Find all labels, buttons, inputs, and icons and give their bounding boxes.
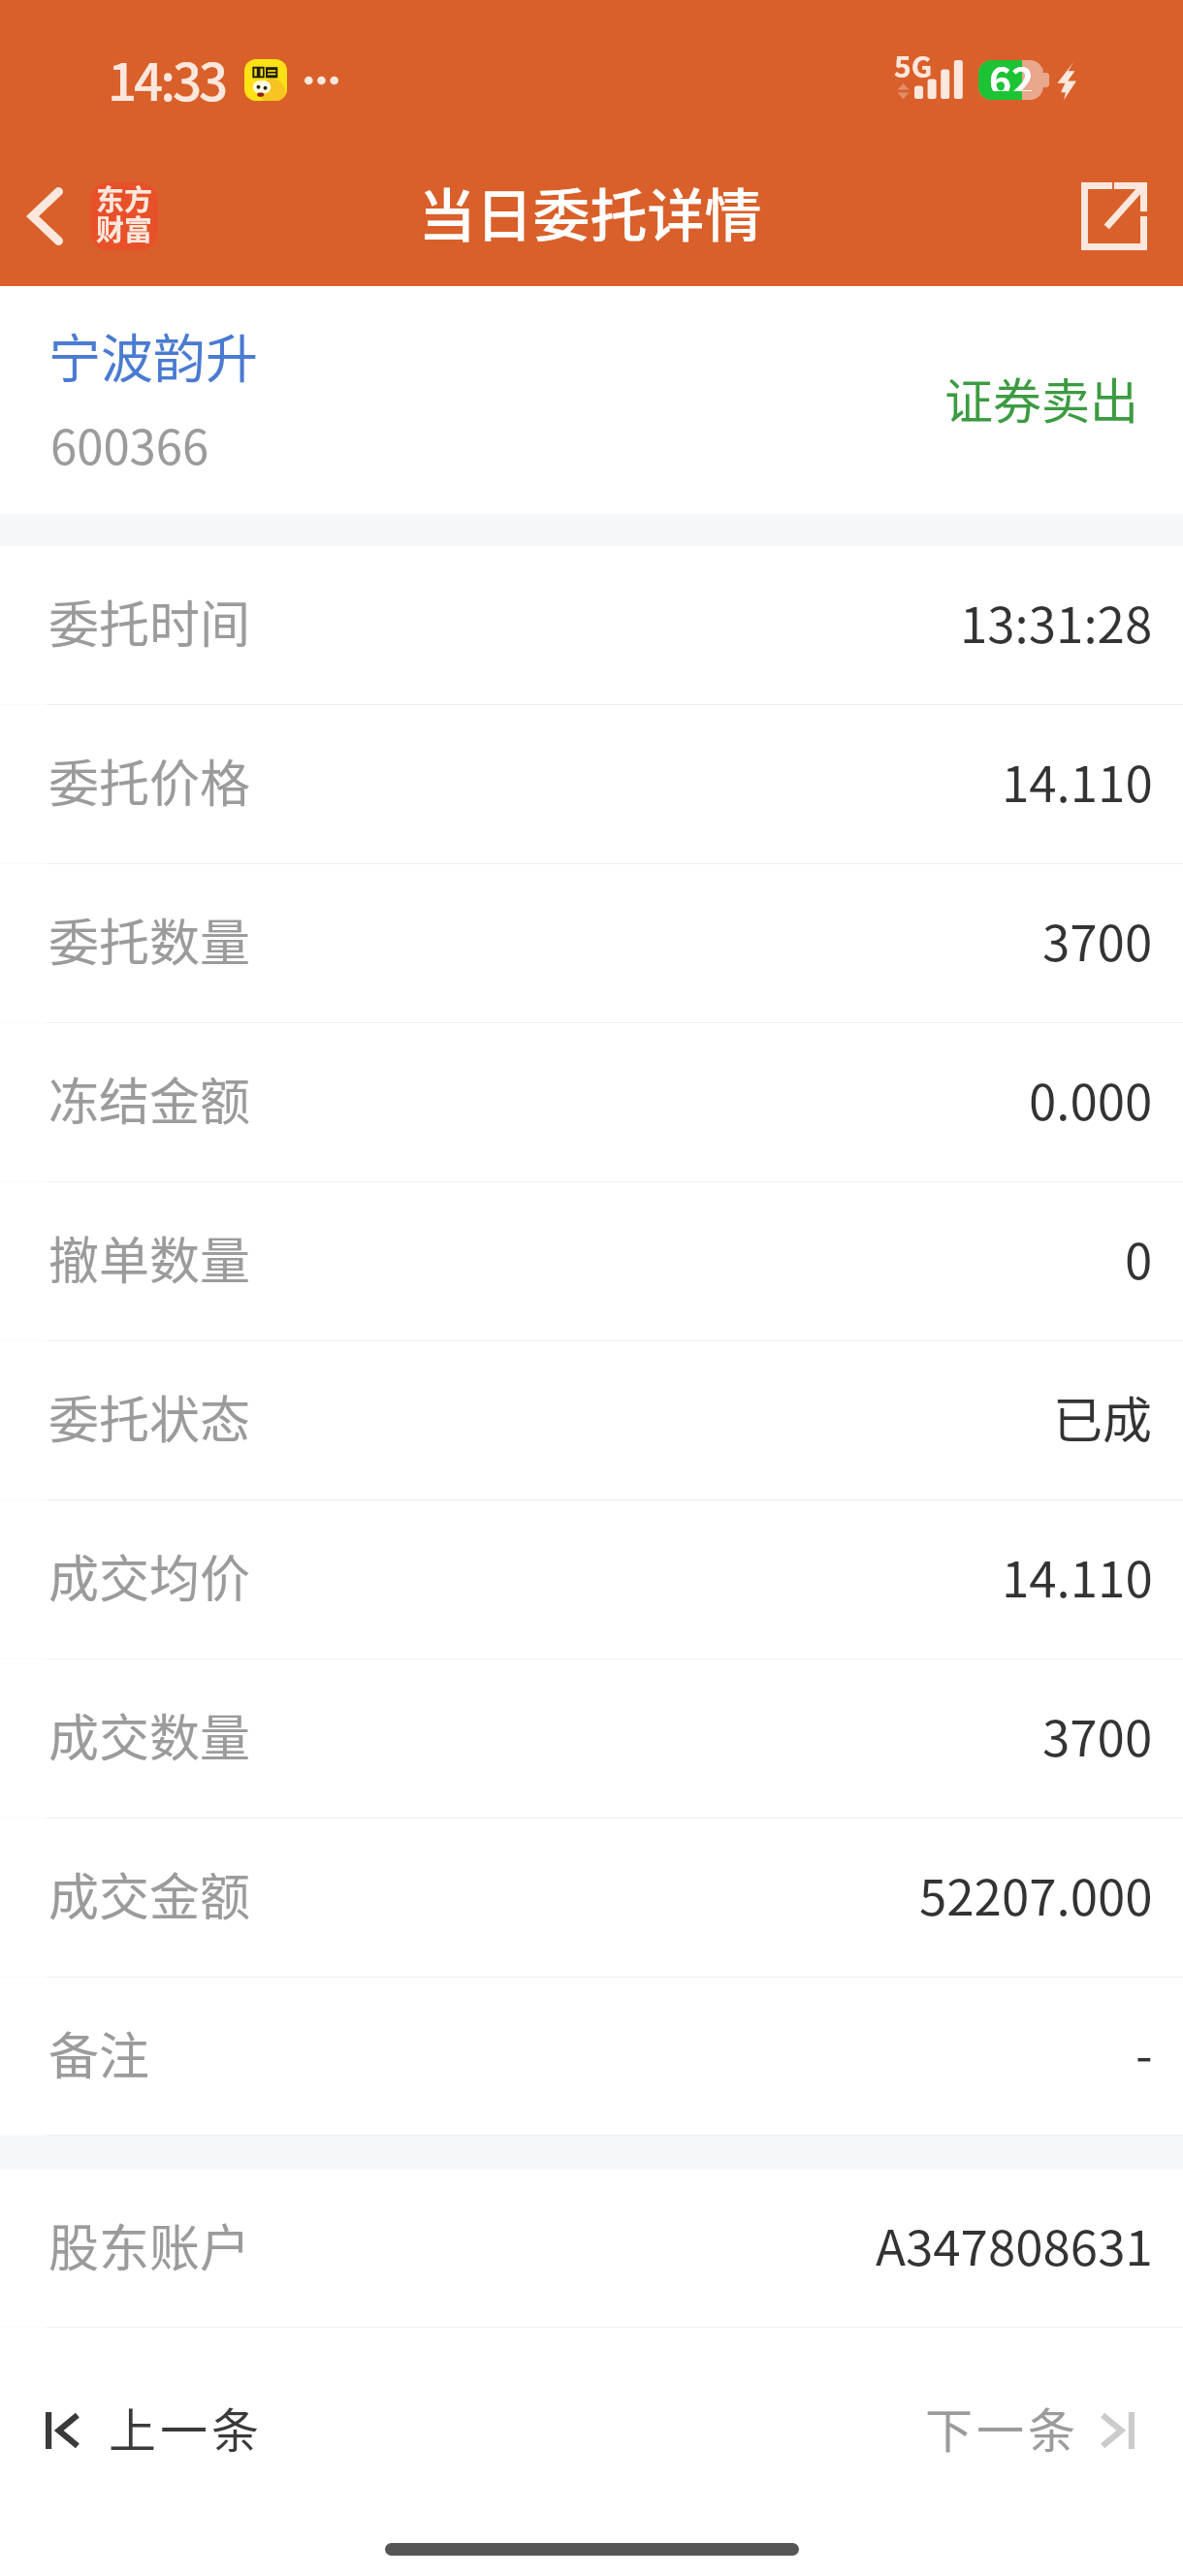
button[interactable]: 宁波韵升: [0, 286, 1183, 514]
staticText: 0: [1125, 1222, 1153, 1294]
staticText: 0.000: [1029, 1063, 1153, 1135]
button[interactable]: 备注: [0, 1978, 1183, 2136]
staticText: 13:31:28: [960, 586, 1153, 658]
button[interactable]: 撤单数量: [0, 1182, 1183, 1341]
staticText: 宁波韵升: [48, 317, 258, 393]
button[interactable]: 委托状态: [0, 1341, 1183, 1500]
staticText: 下一条: [925, 2393, 1080, 2462]
staticText: 备注: [48, 2016, 150, 2089]
staticText: 股东账户: [48, 2208, 251, 2281]
staticText: 成交金额: [48, 1857, 251, 1930]
staticText: A347808631: [876, 2208, 1153, 2280]
staticText: 委托时间: [48, 585, 251, 658]
button[interactable]: 成交数量: [0, 1659, 1183, 1819]
button[interactable]: 冻结金额: [0, 1023, 1183, 1182]
button[interactable]: 成交金额: [0, 1819, 1183, 1978]
staticText: 财富: [96, 208, 153, 248]
staticText: 14.110: [1002, 1540, 1153, 1612]
staticText: 委托状态: [48, 1380, 251, 1453]
staticText: 委托数量: [48, 903, 251, 976]
staticText: 5G: [894, 44, 933, 85]
button[interactable]: 委托价格: [0, 705, 1183, 864]
staticText: 3700: [1042, 904, 1153, 976]
button[interactable]: 委托数量: [0, 864, 1183, 1023]
button[interactable]: 下一条: [902, 2380, 1183, 2480]
staticText: 撤单数量: [48, 1221, 251, 1294]
button[interactable]: Open in browser: [1073, 175, 1155, 258]
staticText: 52207.000: [919, 1858, 1153, 1930]
staticText: 14.110: [1002, 745, 1153, 817]
staticText: 已成: [1053, 1381, 1153, 1453]
button[interactable]: 委托时间: [0, 546, 1183, 705]
staticText: 证券卖出: [944, 363, 1138, 433]
staticText: 当日委托详情: [418, 171, 762, 253]
staticText: 600366: [50, 409, 209, 478]
staticText: 委托价格: [48, 744, 251, 817]
button[interactable]: Back: [10, 177, 168, 256]
staticText: 3700: [1042, 1699, 1153, 1771]
staticText: 上一条: [109, 2393, 264, 2462]
staticText: 成交均价: [48, 1539, 251, 1612]
staticText: 冻结金额: [48, 1062, 251, 1135]
staticText: 14:33: [108, 42, 226, 116]
button[interactable]: 上一条: [0, 2380, 287, 2480]
staticText: 东方: [96, 182, 153, 218]
button[interactable]: 股东账户: [0, 2170, 1183, 2328]
staticText: 成交数量: [48, 1698, 251, 1771]
staticText: -: [1135, 2016, 1153, 2088]
button[interactable]: 成交均价: [0, 1500, 1183, 1659]
other: Back: [28, 187, 63, 245]
staticText: 62: [989, 60, 1035, 91]
